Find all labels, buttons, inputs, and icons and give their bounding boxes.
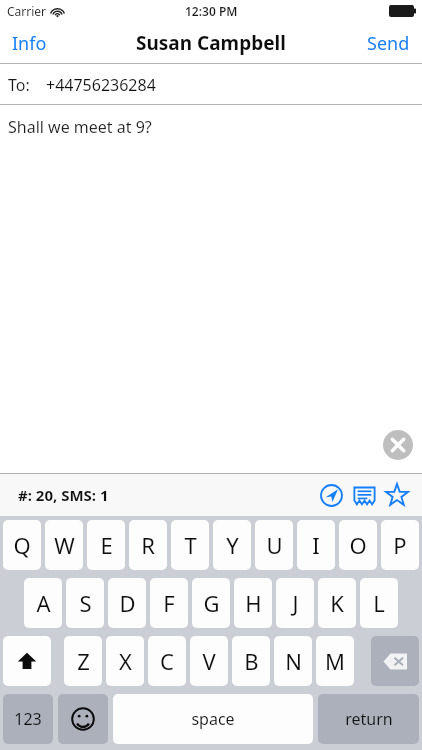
- button[interactable]: Z: [64, 636, 102, 686]
- button[interactable]: return: [318, 694, 419, 744]
- button[interactable]: L: [360, 578, 398, 628]
- button[interactable]: 123: [3, 694, 53, 744]
- staticText: L: [373, 588, 385, 618]
- staticText: B: [244, 646, 259, 676]
- staticText: space: [191, 708, 235, 730]
- button[interactable]: X: [106, 636, 144, 686]
- button[interactable]: U: [255, 520, 293, 570]
- staticText: H: [245, 588, 262, 618]
- button[interactable]: V: [190, 636, 228, 686]
- staticText: +44756236284: [46, 74, 156, 96]
- staticText: Send: [367, 31, 410, 56]
- button[interactable]: E: [87, 520, 125, 570]
- button[interactable]: N: [274, 636, 312, 686]
- staticText: I: [312, 530, 320, 560]
- staticText: 123: [14, 708, 42, 730]
- button[interactable]: W: [45, 520, 83, 570]
- staticText: W: [54, 530, 75, 560]
- button[interactable]: space: [113, 694, 313, 744]
- staticText: Q: [13, 530, 31, 560]
- staticText: V: [202, 646, 216, 676]
- button[interactable]: K: [318, 578, 356, 628]
- staticText: D: [119, 588, 136, 618]
- button[interactable]: D: [108, 578, 146, 628]
- staticText: U: [266, 530, 283, 560]
- staticText: C: [160, 646, 174, 676]
- button[interactable]: Emoji: [58, 694, 108, 744]
- staticText: Susan Campbell: [136, 30, 286, 56]
- button[interactable]: S: [66, 578, 104, 628]
- button[interactable]: Favourite: [382, 480, 412, 510]
- button[interactable]: To:: [0, 64, 422, 105]
- button[interactable]: F: [150, 578, 188, 628]
- staticText: E: [100, 530, 113, 560]
- staticText: To:: [8, 74, 30, 96]
- staticText: Y: [226, 530, 239, 560]
- button[interactable]: Templates: [349, 480, 379, 510]
- button[interactable]: Info: [0, 22, 59, 64]
- staticText: G: [203, 588, 220, 618]
- button[interactable]: R: [129, 520, 167, 570]
- button[interactable]: P: [381, 520, 419, 570]
- button[interactable]: M: [316, 636, 354, 686]
- button[interactable]: H: [234, 578, 272, 628]
- button[interactable]: A: [24, 578, 62, 628]
- button[interactable]: G: [192, 578, 230, 628]
- staticText: S: [79, 588, 92, 618]
- staticText: 12:30 PM: [185, 3, 238, 19]
- button[interactable]: Location: [316, 480, 346, 510]
- staticText: P: [393, 530, 407, 560]
- button[interactable]: Clear message: [383, 430, 413, 460]
- button[interactable]: Backspace: [371, 636, 419, 686]
- button[interactable]: Q: [3, 520, 41, 570]
- button[interactable]: O: [339, 520, 377, 570]
- button[interactable]: Y: [213, 520, 251, 570]
- button[interactable]: J: [276, 578, 314, 628]
- button[interactable]: T: [171, 520, 209, 570]
- staticText: O: [349, 530, 367, 560]
- staticText: K: [330, 588, 344, 618]
- button[interactable]: Shift: [3, 636, 51, 686]
- button[interactable]: C: [148, 636, 186, 686]
- staticText: N: [285, 646, 302, 676]
- staticText: A: [36, 588, 51, 618]
- button[interactable]: B: [232, 636, 270, 686]
- button[interactable]: Send: [355, 22, 422, 64]
- staticText: T: [184, 530, 197, 560]
- button[interactable]: I: [297, 520, 335, 570]
- staticText: Carrier: [7, 3, 47, 19]
- staticText: R: [141, 530, 155, 560]
- staticText: X: [119, 646, 132, 676]
- staticText: return: [345, 708, 393, 730]
- staticText: F: [163, 588, 175, 618]
- staticText: Z: [77, 646, 90, 676]
- staticText: M: [325, 646, 345, 676]
- staticText: J: [292, 588, 299, 618]
- staticText: Info: [12, 31, 47, 56]
- staticText: #: 20, SMS: 1: [18, 485, 109, 505]
- staticText: Shall we meet at 9?: [8, 116, 152, 138]
